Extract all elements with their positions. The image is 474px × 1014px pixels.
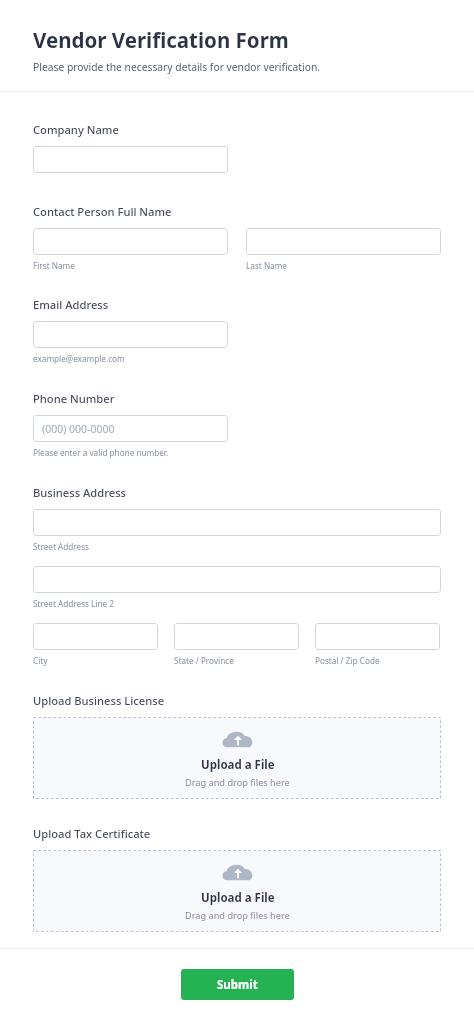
staticText: example@example.com <box>33 353 125 364</box>
staticText: Upload a File <box>201 757 275 773</box>
staticText: Please enter a valid phone number. <box>33 447 169 458</box>
button[interactable] <box>33 146 228 173</box>
staticText: Contact Person Full Name <box>33 204 172 219</box>
staticText: First Name <box>33 260 75 271</box>
staticText: Upload Business License <box>33 693 165 708</box>
staticText: Business Address <box>33 485 127 500</box>
button[interactable] <box>33 228 228 255</box>
staticText: Street Address Line 2 <box>33 598 114 609</box>
button[interactable] <box>33 566 441 593</box>
staticText: Please provide the necessary details for… <box>33 60 321 74</box>
button[interactable]: Upload a File <box>33 850 441 932</box>
button[interactable]: (000) 000-0000 <box>33 415 228 442</box>
staticText: Street Address <box>33 541 89 552</box>
button[interactable] <box>174 623 299 650</box>
staticText: City <box>33 655 48 666</box>
staticText: Upload a File <box>201 890 275 906</box>
button[interactable] <box>33 321 228 348</box>
staticText: State / Province <box>174 655 234 666</box>
staticText: Email Address <box>33 297 109 312</box>
staticText: Submit <box>217 977 258 993</box>
staticText: Vendor Verification Form <box>33 26 289 54</box>
button[interactable] <box>246 228 441 255</box>
staticText: Company Name <box>33 122 119 137</box>
staticText: Postal / Zip Code <box>315 655 380 666</box>
staticText: Last Name <box>246 260 287 271</box>
staticText: Drag and drop files here <box>185 776 290 789</box>
staticText: Phone Number <box>33 391 115 406</box>
button[interactable]: Submit <box>181 969 294 1000</box>
button[interactable] <box>315 623 440 650</box>
button[interactable] <box>33 623 158 650</box>
staticText: Drag and drop files here <box>185 909 290 922</box>
staticText: Upload Tax Certificate <box>33 826 151 841</box>
button[interactable]: Upload a File <box>33 717 441 799</box>
staticText: (000) 000-0000 <box>42 422 115 436</box>
button[interactable] <box>33 509 441 536</box>
